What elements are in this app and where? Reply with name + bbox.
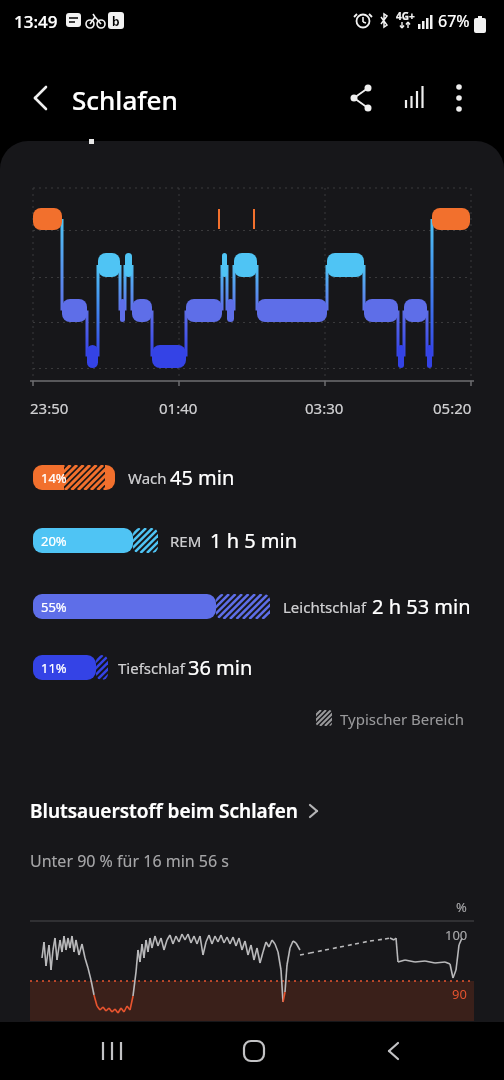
staticText: Schlafen bbox=[72, 82, 178, 117]
staticText: 90 bbox=[452, 985, 467, 1003]
staticText: 05:20 bbox=[433, 398, 472, 418]
button[interactable] bbox=[214, 1022, 294, 1080]
button[interactable] bbox=[22, 74, 70, 122]
staticText: Tiefschlaf bbox=[118, 658, 185, 678]
button[interactable] bbox=[340, 76, 384, 120]
staticText: 23:50 bbox=[30, 398, 69, 418]
button[interactable] bbox=[438, 76, 482, 120]
staticText: 55% bbox=[41, 598, 67, 616]
staticText: 45 min bbox=[170, 464, 235, 491]
button[interactable] bbox=[353, 1022, 433, 1080]
staticText: Wach bbox=[128, 468, 167, 488]
staticText: 13:49 bbox=[14, 10, 58, 33]
staticText: % bbox=[456, 898, 467, 916]
staticText: b bbox=[112, 13, 120, 29]
button[interactable] bbox=[73, 1022, 153, 1080]
staticText: 1 h 5 min bbox=[210, 527, 298, 554]
staticText: Typischer Bereich bbox=[340, 709, 464, 729]
staticText: Leichtschlaf bbox=[283, 597, 367, 617]
staticText: 11% bbox=[41, 659, 67, 677]
staticText: 01:40 bbox=[159, 398, 198, 418]
staticText: 67% bbox=[438, 10, 470, 32]
button[interactable] bbox=[390, 76, 434, 120]
staticText: 20% bbox=[41, 532, 67, 550]
staticText: REM bbox=[170, 531, 202, 551]
staticText: Unter 90 % für 16 min 56 s bbox=[30, 850, 229, 872]
staticText: 03:30 bbox=[305, 398, 344, 418]
staticText: Blutsauerstoff beim Schlafen bbox=[30, 798, 298, 824]
staticText: 4G+ bbox=[396, 9, 415, 23]
staticText: 2 h 53 min bbox=[372, 593, 471, 620]
staticText: 36 min bbox=[188, 654, 253, 681]
staticText: 14% bbox=[41, 469, 67, 487]
staticText: 100 bbox=[445, 926, 468, 944]
button[interactable]: Blutsauerstoff beim Schlafen bbox=[20, 798, 340, 842]
